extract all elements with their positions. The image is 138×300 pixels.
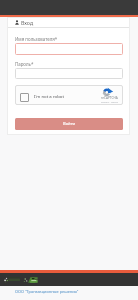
button[interactable]: Вход — [15, 17, 130, 27]
staticText: Privacy - Terms — [101, 100, 118, 103]
button[interactable]: Логотип компании — [0, 273, 138, 286]
staticText: Войти — [63, 121, 76, 127]
other: I'm not a robot checkbox — [20, 93, 29, 102]
staticText: reCAPTCHA — [101, 96, 118, 100]
button[interactable]: ООО "Транзакционные решения" — [15, 289, 79, 294]
button[interactable]: Имя пользователя — [15, 43, 123, 55]
staticText: I'm not a robot — [34, 93, 64, 99]
staticText: Вход — [21, 19, 34, 26]
button[interactable]: I'm not a robot checkbox — [15, 85, 123, 105]
button[interactable]: Пароль — [15, 68, 123, 79]
button[interactable]: Войти — [15, 118, 123, 130]
staticText: Пароль* — [15, 61, 34, 67]
staticText: Имя пользователя* — [15, 36, 58, 42]
